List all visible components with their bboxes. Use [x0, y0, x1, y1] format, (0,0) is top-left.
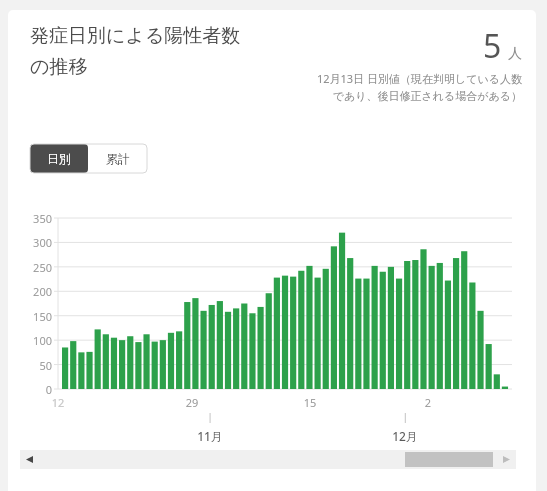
staticText: 日別 [47, 151, 71, 166]
staticText: 12 [48, 395, 68, 410]
staticText: 150 [8, 309, 52, 324]
staticText: 2 [418, 395, 438, 410]
staticText: 100 [8, 333, 52, 348]
staticText: 0 [8, 382, 52, 397]
button[interactable]: 累計 [88, 144, 147, 173]
button[interactable]: Scroll left [20, 450, 39, 469]
staticText: 15 [300, 395, 320, 410]
staticText: 累計 [106, 151, 130, 166]
staticText: 300 [8, 235, 52, 250]
staticText: 12月 [389, 428, 421, 444]
staticText: 250 [8, 260, 52, 275]
staticText: 人 [508, 45, 522, 63]
staticText: 11月 [194, 428, 226, 444]
staticText: 12月13日 日別値（現在判明している人数 であり、後日修正される場合がある） [316, 71, 522, 103]
staticText: 200 [8, 284, 52, 299]
staticText: 5 [483, 24, 502, 68]
staticText: 50 [8, 358, 52, 373]
button[interactable]: Scroll right [497, 450, 516, 469]
staticText: 発症日別による陽性者数 の推移 [30, 24, 241, 79]
button[interactable]: 日別 [30, 144, 88, 173]
staticText: 29 [182, 395, 202, 410]
staticText: 350 [8, 211, 52, 226]
